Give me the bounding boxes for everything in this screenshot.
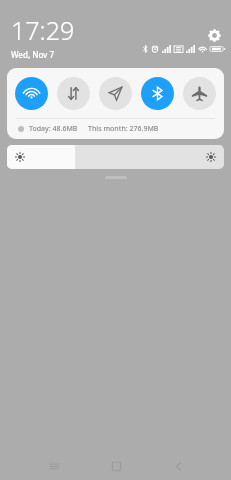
staticText: 17:29 — [11, 13, 75, 47]
staticText: This month: 276.9MB — [88, 124, 159, 134]
button[interactable]: Bluetooth — [141, 77, 174, 110]
button[interactable]: Brightness — [7, 145, 224, 169]
button[interactable]: Location — [99, 77, 132, 110]
button[interactable]: Today: 48.6MB — [7, 119, 224, 139]
button[interactable]: Mobile data — [57, 77, 90, 110]
button[interactable]: Home — [102, 452, 130, 480]
button[interactable]: Wi-Fi — [15, 77, 48, 110]
staticText: Today: 48.6MB — [29, 124, 78, 134]
staticText: Wed, Nov 7 — [11, 49, 54, 60]
button[interactable]: Airplane mode — [183, 77, 216, 110]
button[interactable]: Settings — [205, 26, 223, 44]
